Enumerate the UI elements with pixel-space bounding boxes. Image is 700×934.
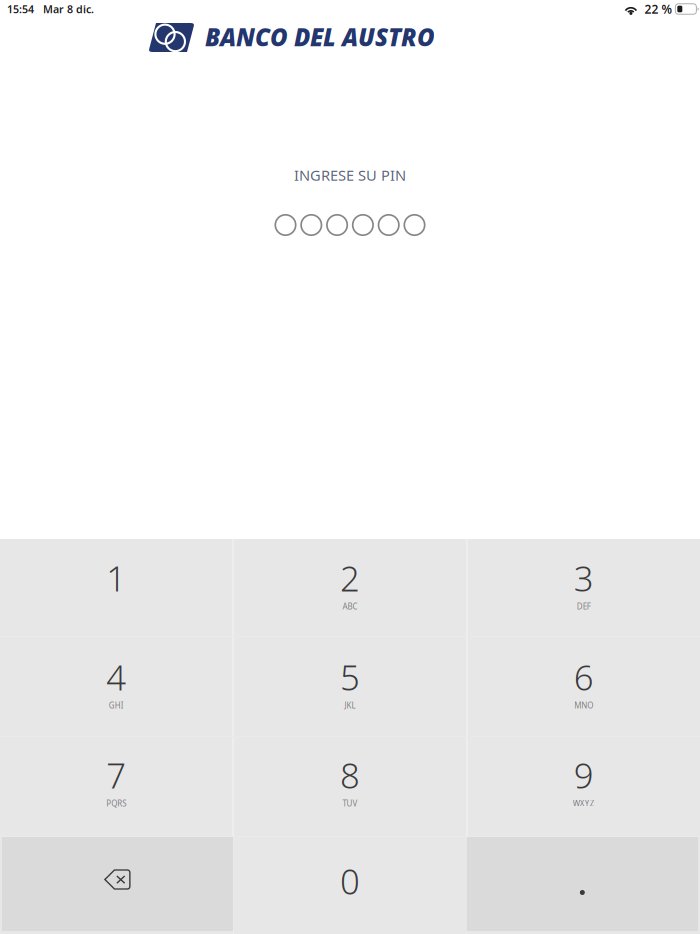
staticText: 4 bbox=[106, 654, 126, 700]
staticText: Mar 8 dic. bbox=[43, 2, 94, 16]
staticText: PQRS bbox=[106, 798, 126, 809]
staticText: DEF bbox=[577, 601, 591, 612]
button[interactable]: 2 bbox=[234, 539, 466, 636]
staticText: 8 bbox=[340, 752, 360, 798]
button[interactable]: 7 bbox=[0, 737, 233, 836]
staticText: 2 bbox=[340, 555, 360, 601]
staticText: 22 % bbox=[644, 1, 672, 17]
button[interactable]: 8 bbox=[234, 737, 466, 836]
button[interactable]: 6 bbox=[467, 637, 700, 736]
staticText: 7 bbox=[106, 752, 126, 798]
button[interactable]: 1 bbox=[0, 539, 233, 636]
button[interactable]: 0 bbox=[233, 837, 467, 934]
staticText: 15:54 bbox=[7, 2, 34, 16]
staticText: INGRESE SU PIN bbox=[294, 165, 406, 185]
button[interactable]: 5 bbox=[234, 637, 466, 736]
button[interactable]: 3 bbox=[467, 539, 700, 636]
staticText: ABC bbox=[342, 601, 357, 612]
button[interactable]: Decimal point bbox=[467, 837, 700, 934]
staticText: 5 bbox=[340, 654, 360, 700]
staticText: WXYZ bbox=[573, 798, 595, 809]
staticText: BANCO DEL AUSTRO bbox=[205, 21, 435, 53]
staticText: 9 bbox=[574, 752, 594, 798]
staticText: 1 bbox=[106, 555, 126, 601]
staticText: GHI bbox=[109, 700, 124, 711]
staticText: MNO bbox=[574, 700, 593, 711]
staticText: 6 bbox=[574, 654, 594, 700]
staticText: 0 bbox=[340, 858, 360, 904]
staticText: JKL bbox=[344, 700, 355, 711]
button[interactable]: Delete bbox=[0, 837, 233, 934]
button[interactable]: 4 bbox=[0, 637, 233, 736]
staticText: TUV bbox=[342, 798, 357, 809]
button[interactable]: 9 bbox=[467, 737, 700, 836]
staticText: 3 bbox=[574, 555, 594, 601]
